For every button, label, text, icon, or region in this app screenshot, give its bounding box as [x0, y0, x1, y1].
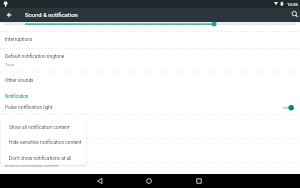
- button[interactable]: Back: [0, 8, 19, 22]
- staticText: Show all notification content: [9, 125, 70, 131]
- staticText: Tejat: [5, 62, 15, 67]
- button[interactable]: Notification: [0, 91, 300, 102]
- staticText: Hide sensitive notification content: [9, 140, 82, 146]
- staticText: Show all notification content: [5, 163, 58, 168]
- button[interactable]: Show all notification content: [1, 121, 86, 135]
- staticText: Other sounds: [5, 78, 34, 84]
- button[interactable]: Don't show notifications at all: [1, 152, 86, 165]
- staticText: Don't show notifications at all: [9, 156, 72, 162]
- staticText: Notification: [5, 94, 29, 99]
- staticText: Default notification ringtone: [5, 54, 65, 60]
- button[interactable]: Hide sensitive notification content: [1, 136, 86, 150]
- button[interactable]: Interruptions: [0, 33, 300, 47]
- staticText: Pulse notification light: [5, 105, 53, 111]
- button[interactable]: Home: [141, 174, 157, 188]
- button[interactable]: Back: [92, 174, 108, 188]
- button[interactable]: Other sounds: [0, 74, 300, 88]
- button[interactable]: Search: [282, 8, 300, 22]
- staticText: Sound & notification: [25, 12, 78, 19]
- button[interactable]: Default notification ringtone: [0, 50, 300, 64]
- staticText: 10:36: [287, 2, 298, 7]
- button[interactable]: Pulse notification light: [280, 101, 298, 114]
- button[interactable]: Recent apps: [191, 174, 207, 188]
- button[interactable]: Pulse notification light: [0, 101, 300, 115]
- staticText: Interruptions: [5, 37, 33, 43]
